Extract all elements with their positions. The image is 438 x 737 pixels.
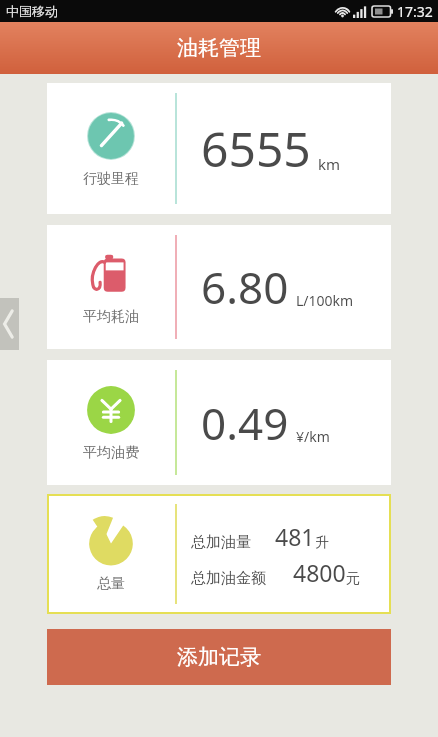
staticText: 总加油量 bbox=[191, 533, 251, 552]
staticText: 481 bbox=[275, 521, 315, 552]
staticText: L/100km bbox=[296, 291, 354, 310]
button[interactable]: 添加记录 bbox=[47, 629, 391, 685]
staticText: 升 bbox=[315, 534, 329, 552]
staticText: 17:32 bbox=[397, 2, 433, 21]
button[interactable]: 平均耗油 bbox=[47, 225, 391, 349]
staticText: km bbox=[318, 154, 341, 174]
staticText: 添加记录 bbox=[177, 644, 261, 670]
staticText: 油耗管理 bbox=[177, 35, 261, 61]
staticText: 总量 bbox=[97, 575, 125, 593]
staticText: 平均油费 bbox=[83, 444, 139, 462]
button[interactable]: 行驶里程 bbox=[47, 83, 391, 214]
staticText: 0.49 bbox=[201, 393, 289, 453]
staticText: 6555 bbox=[201, 116, 311, 181]
staticText: ¥/km bbox=[296, 427, 330, 446]
button[interactable]: 平均油费 bbox=[47, 360, 391, 485]
staticText: 6.80 bbox=[201, 257, 289, 317]
staticText: 元 bbox=[346, 570, 360, 588]
staticText: 总加油金额 bbox=[191, 569, 266, 588]
button[interactable]: Back bbox=[0, 298, 19, 350]
staticText: 行驶里程 bbox=[83, 170, 139, 188]
button[interactable]: 总量 bbox=[47, 494, 391, 614]
staticText: 中国移动 bbox=[6, 3, 58, 19]
staticText: 4800 bbox=[293, 557, 346, 588]
staticText: 平均耗油 bbox=[83, 308, 139, 326]
